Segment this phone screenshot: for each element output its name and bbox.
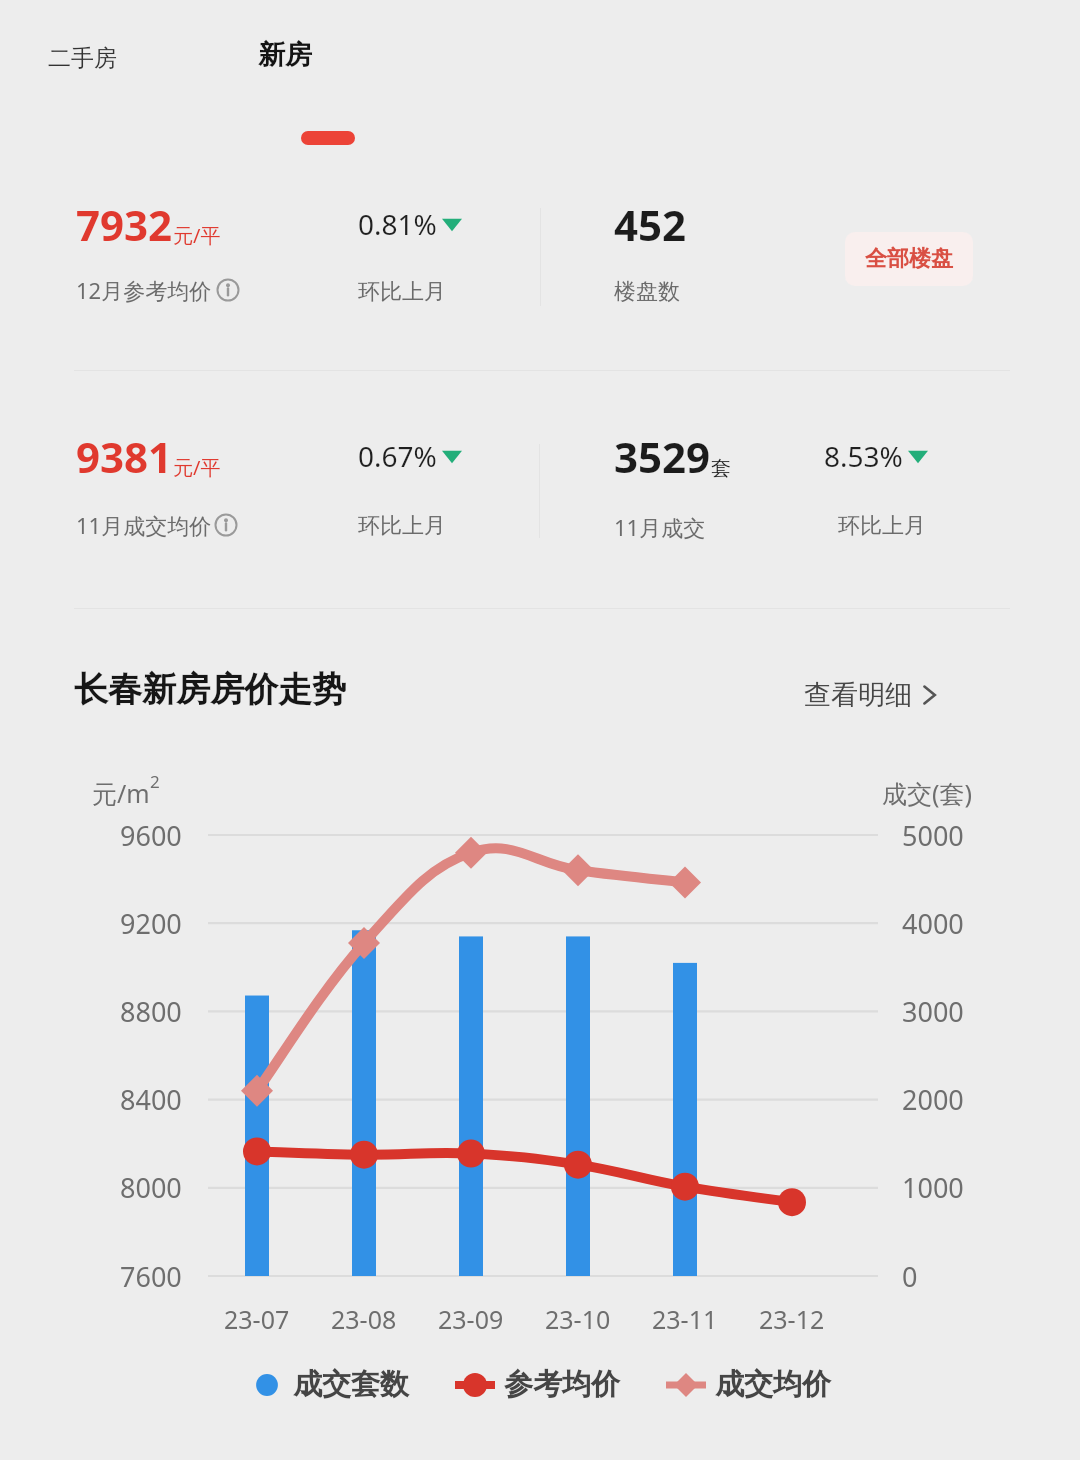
staticText: 参考均价 bbox=[504, 1366, 620, 1403]
staticText: 8.53% bbox=[824, 437, 903, 475]
staticText: 套 bbox=[711, 456, 731, 481]
staticText: 二手房 bbox=[48, 44, 117, 73]
staticText: 环比上月 bbox=[358, 278, 446, 306]
staticText: 楼盘数 bbox=[614, 278, 680, 306]
button[interactable]: 成交均价 bbox=[666, 1362, 831, 1407]
staticText: 全部楼盘 bbox=[865, 245, 953, 273]
staticText: 7932 bbox=[76, 196, 173, 253]
staticText: 0.67% bbox=[358, 437, 437, 475]
button[interactable]: 参考均价 bbox=[455, 1362, 620, 1407]
staticText: 成交套数 bbox=[293, 1366, 409, 1403]
other: Decrease bbox=[442, 217, 462, 232]
staticText: 0.81% bbox=[358, 205, 437, 243]
staticText: 452 bbox=[614, 196, 687, 253]
staticText: 新房 bbox=[258, 38, 312, 72]
staticText: 元/平 bbox=[173, 454, 221, 481]
staticText: 成交均价 bbox=[715, 1366, 831, 1403]
other: Decrease bbox=[442, 449, 462, 464]
staticText: 3529 bbox=[614, 428, 711, 485]
staticText: 元/平 bbox=[173, 222, 221, 249]
staticText: 环比上月 bbox=[838, 512, 926, 540]
staticText: 11月成交均价 bbox=[76, 510, 212, 540]
button[interactable]: 二手房 bbox=[40, 34, 125, 83]
button[interactable]: Info bbox=[216, 278, 240, 302]
button[interactable]: 全部楼盘 bbox=[845, 232, 973, 286]
button[interactable]: Info bbox=[214, 513, 238, 537]
staticText: 环比上月 bbox=[358, 512, 446, 540]
other: Decrease bbox=[908, 449, 928, 464]
button[interactable]: 查看明细 bbox=[798, 672, 944, 718]
staticText: 查看明细 bbox=[804, 678, 912, 712]
button[interactable]: 新房 bbox=[250, 28, 320, 82]
staticText: 长春新房房价走势 bbox=[74, 668, 346, 711]
staticText: 11月成交 bbox=[614, 512, 706, 542]
staticText: 12月参考均价 bbox=[76, 275, 212, 305]
button[interactable]: 成交套数 bbox=[250, 1362, 409, 1407]
staticText: 9381 bbox=[76, 428, 173, 485]
